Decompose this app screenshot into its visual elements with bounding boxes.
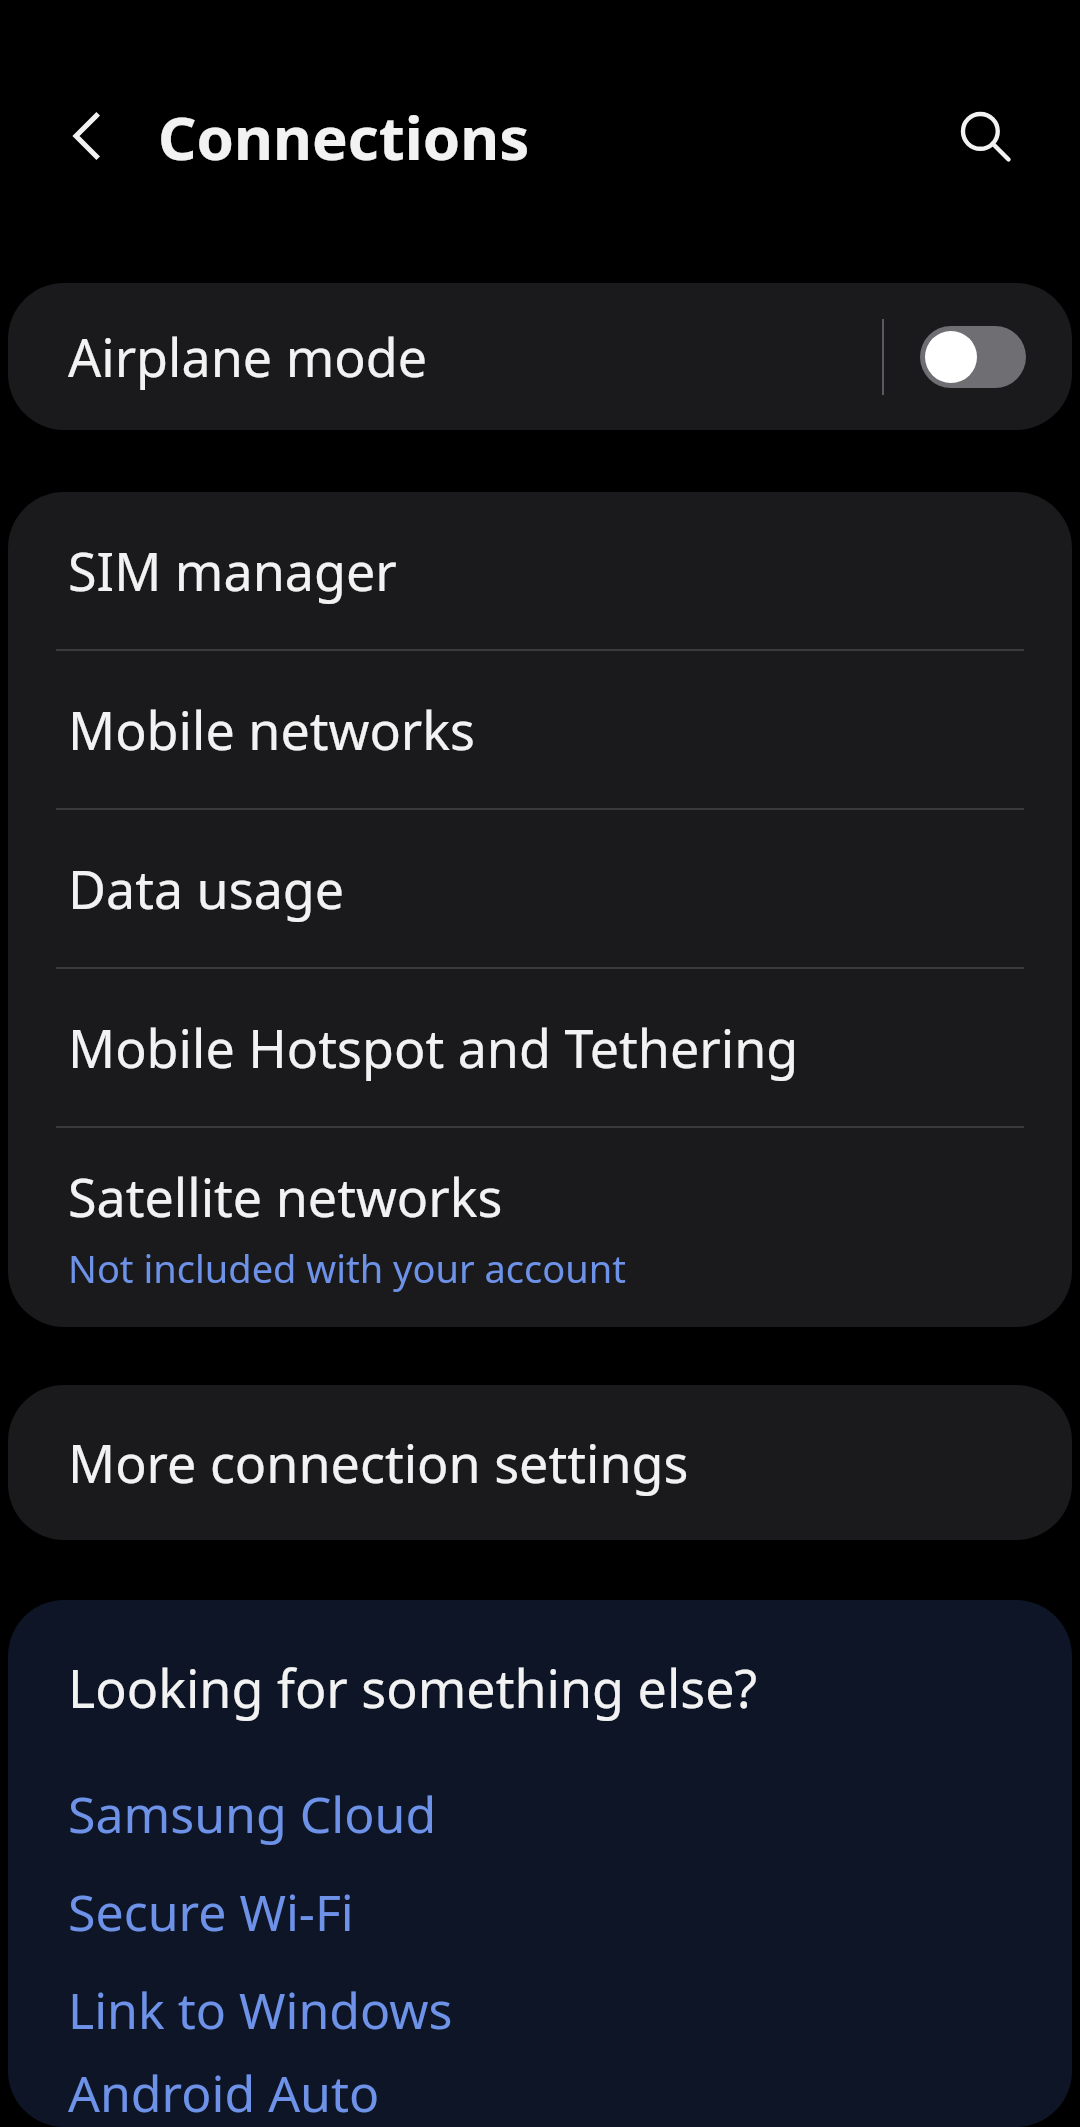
button[interactable]: SIM manager [8,492,1072,649]
staticText: Link to Windows [68,1976,453,2044]
staticText: Mobile Hotspot and Tethering [68,1012,799,1083]
staticText: Secure Wi-Fi [68,1878,354,1946]
staticText: Looking for something else? [68,1652,758,1723]
staticText: Connections [158,96,530,178]
staticText: Android Auto [68,2059,380,2127]
button[interactable]: Satellite networks [8,1128,1072,1327]
staticText: SIM manager [68,535,397,606]
button[interactable]: Samsung Cloud [68,1765,1072,1863]
button[interactable]: Link to Windows [68,1961,1072,2059]
button[interactable]: Data usage [8,810,1072,967]
staticText: Samsung Cloud [68,1780,437,1848]
button[interactable]: Mobile Hotspot and Tethering [8,969,1072,1126]
staticText: Data usage [68,853,345,924]
staticText: Mobile networks [68,694,476,765]
button[interactable]: Back [40,88,136,184]
button[interactable]: Secure Wi-Fi [68,1863,1072,1961]
staticText: Not included with your account [68,1242,626,1294]
button[interactable]: Airplane mode toggle [920,326,1026,388]
button[interactable]: Search [937,88,1033,184]
button[interactable]: Mobile networks [8,651,1072,808]
button[interactable]: Android Auto [68,2059,1072,2127]
button[interactable]: More connection settings [8,1385,1072,1540]
staticText: Airplane mode [68,321,428,392]
staticText: Satellite networks [68,1161,503,1232]
button[interactable]: Airplane mode [8,283,1072,430]
staticText: More connection settings [68,1427,689,1498]
